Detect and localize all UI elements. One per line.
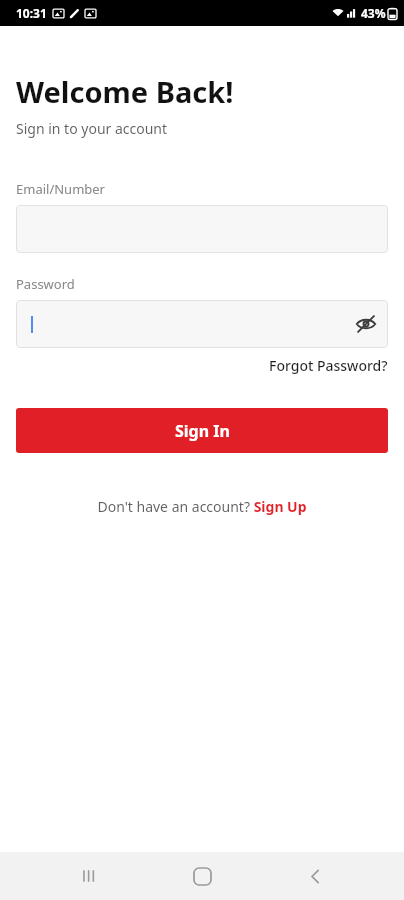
button[interactable]: Show password: [344, 302, 388, 346]
staticText: Welcome Back!: [16, 72, 234, 111]
staticText: Password: [16, 275, 75, 293]
staticText: Don't have an account? Sign Up: [97, 497, 307, 516]
staticText: Sign In: [175, 420, 230, 442]
button[interactable]: Forgot Password?: [269, 356, 388, 375]
staticText: Sign in to your account: [16, 119, 168, 138]
button[interactable]: Sign In: [16, 408, 388, 453]
button[interactable]: Recent apps: [65, 852, 113, 900]
button[interactable]: Back: [291, 852, 339, 900]
staticText: Email/Number: [16, 180, 105, 198]
staticText: 10:31: [16, 5, 47, 21]
button[interactable]: Show password: [16, 300, 388, 348]
staticText: 43%: [361, 5, 386, 21]
button[interactable]: [16, 205, 388, 253]
staticText: Forgot Password?: [269, 356, 388, 375]
button[interactable]: Home: [178, 852, 226, 900]
button[interactable]: Don't have an account? Sign Up: [97, 497, 307, 516]
